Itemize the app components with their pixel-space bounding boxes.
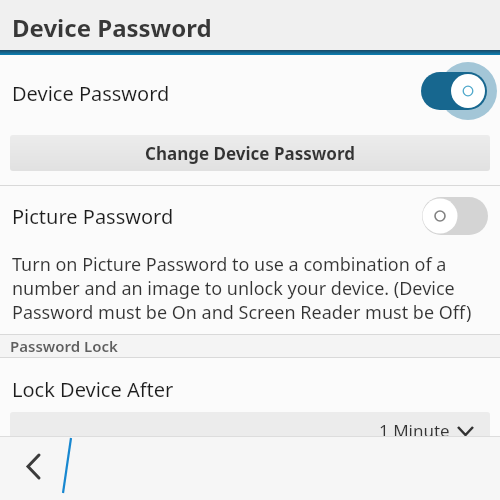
button[interactable] [14,448,54,488]
staticText: Device Password [12,11,212,44]
button[interactable]: Device Password [0,55,500,131]
staticText: Change Device Password [145,142,355,165]
staticText: Picture Password [12,203,174,230]
staticText: Lock Device After [12,376,174,403]
staticText: Password Lock [10,336,118,356]
staticText: 1 Minute [379,419,450,442]
staticText: Device Password [12,80,170,107]
button[interactable]: 1 Minute [10,412,490,457]
staticText: Turn on Picture Password to use a combin… [12,252,472,324]
button[interactable]: Picture Password [0,186,500,246]
button[interactable]: Change Device Password [10,135,490,171]
